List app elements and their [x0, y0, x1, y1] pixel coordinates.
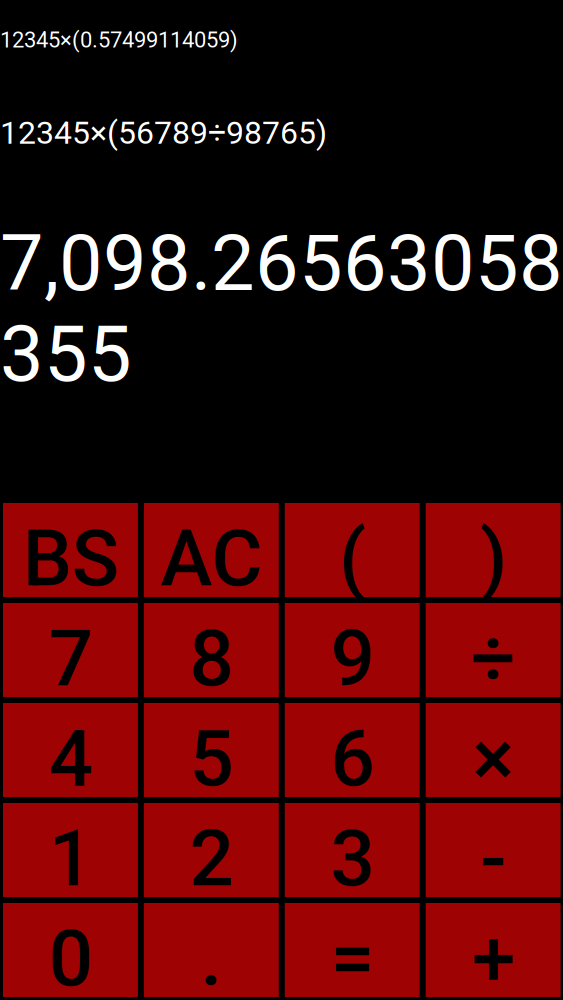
staticText: -	[480, 813, 507, 904]
button[interactable]: Plus	[426, 903, 561, 997]
button[interactable]: Divide	[426, 603, 561, 697]
button[interactable]: Decimal point	[144, 903, 279, 997]
staticText: .	[200, 913, 222, 1000]
button[interactable]: Open parenthesis	[285, 503, 420, 597]
button[interactable]: Minus	[426, 803, 561, 897]
staticText: 9	[330, 613, 374, 704]
button[interactable]: 6	[285, 703, 420, 797]
button[interactable]: Equals	[285, 903, 420, 997]
button[interactable]: 3	[285, 803, 420, 897]
button[interactable]: Close parenthesis	[426, 503, 561, 597]
staticText: 12345×(0.57499114059)	[0, 27, 238, 53]
staticText: 1	[48, 813, 92, 904]
button[interactable]: Backspace	[3, 503, 138, 597]
staticText: 12345×(56789÷98765)	[0, 114, 327, 151]
staticText: ÷	[471, 613, 516, 704]
button[interactable]: 4	[3, 703, 138, 797]
staticText: 4	[48, 713, 92, 804]
staticText: BS	[22, 513, 118, 604]
staticText: 2	[189, 813, 233, 904]
button[interactable]: All clear	[144, 503, 279, 597]
staticText: ×	[472, 713, 514, 804]
button[interactable]: 9	[285, 603, 420, 697]
staticText: +	[472, 913, 515, 1000]
button[interactable]: 0	[3, 903, 138, 997]
button[interactable]: Multiply	[426, 703, 561, 797]
button[interactable]: 5	[144, 703, 279, 797]
staticText: 5	[189, 713, 233, 804]
staticText: (	[339, 513, 366, 604]
button[interactable]: 1	[3, 803, 138, 897]
staticText: AC	[160, 513, 262, 604]
staticText: 7	[48, 613, 92, 704]
staticText: 8	[189, 613, 233, 704]
staticText: 3	[330, 813, 374, 904]
button[interactable]: 2	[144, 803, 279, 897]
staticText: 6	[330, 713, 374, 804]
staticText: 0	[48, 913, 92, 1000]
staticText: 7,098.26563058355	[0, 218, 563, 400]
staticText: =	[330, 913, 374, 1000]
button[interactable]: 8	[144, 603, 279, 697]
staticText: )	[480, 513, 507, 604]
button[interactable]: 7	[3, 603, 138, 697]
